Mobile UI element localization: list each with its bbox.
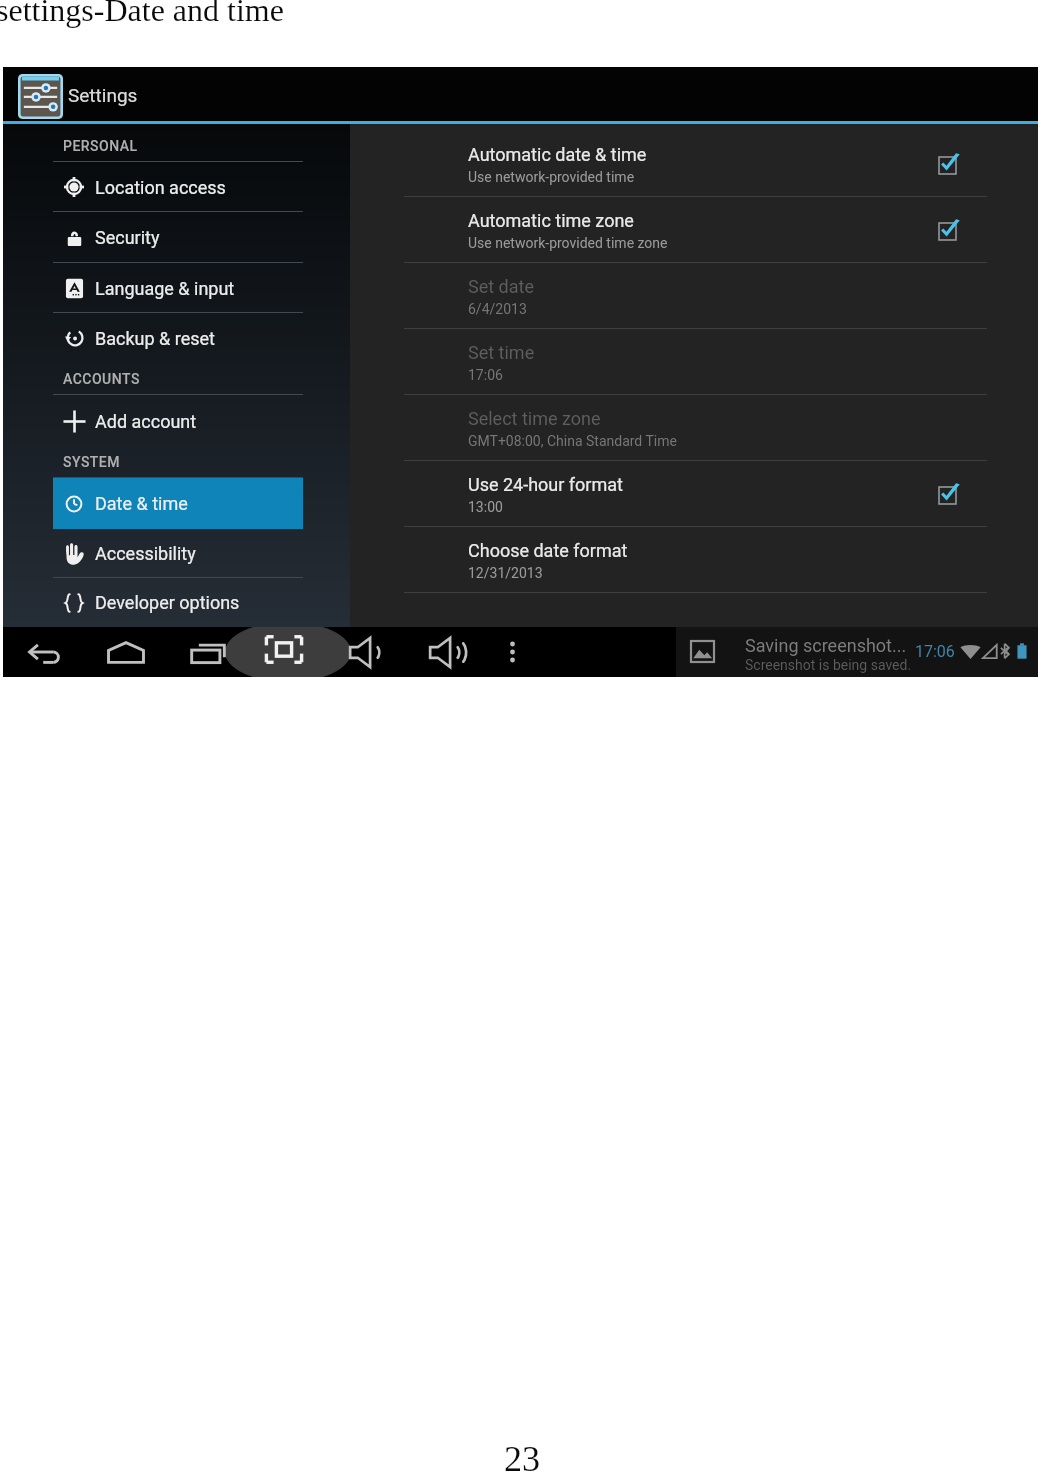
button[interactable] <box>3 212 350 263</box>
staticText: ACCOUNTS <box>63 371 140 387</box>
button[interactable]: Use 24-hour format <box>350 461 1038 527</box>
staticText: Automatic time zone <box>468 210 634 231</box>
staticText: Select time zone <box>468 408 601 429</box>
button[interactable] <box>53 478 303 529</box>
button[interactable]: Back <box>6 627 88 677</box>
staticText: Set date <box>468 276 534 297</box>
staticText: Settings <box>68 84 138 106</box>
button[interactable]: Home <box>85 627 167 677</box>
staticText: Screenshot is being saved. <box>745 657 912 673</box>
staticText: 6/4/2013 <box>468 301 527 317</box>
staticText: Use network-provided time zone <box>468 235 668 251</box>
button[interactable]: Set date <box>350 263 1038 329</box>
staticText: 17:06 <box>468 367 503 383</box>
staticText: Set time <box>468 342 535 363</box>
button[interactable]: More options <box>471 627 553 677</box>
button[interactable]: Volume up <box>406 627 488 677</box>
staticText: 13:00 <box>468 499 503 515</box>
button[interactable] <box>3 395 350 447</box>
button[interactable]: Volume down <box>323 627 405 677</box>
staticText: Location access <box>95 177 226 198</box>
staticText: GMT+08:00, China Standard Time <box>468 433 677 449</box>
button[interactable]: Recent apps <box>167 627 249 677</box>
staticText: 17:06 <box>915 642 955 661</box>
staticText: Saving screenshot... <box>745 635 907 656</box>
button[interactable] <box>3 162 350 212</box>
button[interactable] <box>3 578 350 627</box>
button[interactable] <box>3 263 350 313</box>
staticText: Choose date format <box>468 540 628 561</box>
staticText: Backup & reset <box>95 328 215 349</box>
button[interactable]: Automatic date & time <box>350 131 1038 197</box>
button[interactable]: Screenshot <box>229 627 348 677</box>
staticText: Add account <box>95 411 197 432</box>
staticText: Language & input <box>95 278 235 299</box>
staticText: settings-Date and time <box>0 0 284 27</box>
button[interactable] <box>3 529 350 578</box>
button[interactable]: Select time zone <box>350 395 1038 461</box>
staticText: 23 <box>504 1439 540 1473</box>
staticText: 12/31/2013 <box>468 565 543 581</box>
staticText: PERSONAL <box>63 138 138 154</box>
staticText: Use 24-hour format <box>468 474 623 495</box>
staticText: Use network-provided time <box>468 169 635 185</box>
staticText: SYSTEM <box>63 454 121 470</box>
staticText: Developer options <box>95 592 240 613</box>
button[interactable] <box>3 313 350 364</box>
button[interactable]: Automatic time zone <box>350 197 1038 263</box>
staticText: Automatic date & time <box>468 144 647 165</box>
staticText: Date & time <box>95 493 188 514</box>
button[interactable]: Choose date format <box>350 527 1038 593</box>
staticText: Accessibility <box>95 543 196 564</box>
button[interactable]: Set time <box>350 329 1038 395</box>
staticText: Security <box>95 227 160 248</box>
